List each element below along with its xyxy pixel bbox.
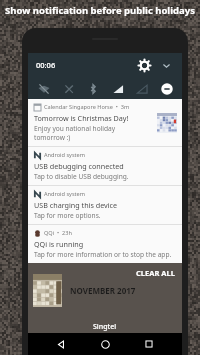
staticText: Tomorrow is Christmas Day! [34, 113, 129, 123]
staticText: Show notification before public holidays [0, 4, 200, 17]
staticText: Enjoy you national holiday tomorrow :) [34, 124, 153, 142]
button[interactable]: Android system [28, 147, 182, 185]
staticText: USB charging this device [34, 200, 118, 210]
staticText: Calendar Singapore Horse • 3m [44, 103, 130, 111]
staticText: QQi is running [34, 239, 84, 249]
staticText: Tap for more information or to stop the … [34, 250, 172, 259]
button[interactable]: Back [50, 333, 72, 355]
staticText: Singtel [93, 322, 117, 332]
button[interactable]: Mobile data [59, 79, 78, 98]
button[interactable]: Settings [136, 57, 152, 73]
staticText: Tap for more options. [34, 211, 101, 220]
staticText: NOVEMBER 2017 [70, 285, 136, 296]
button[interactable]: CLEAR ALL [129, 265, 182, 281]
button[interactable]: Bluetooth [83, 79, 102, 98]
button[interactable]: Signal 2 [132, 79, 151, 98]
staticText: 00:06 [36, 60, 56, 70]
button[interactable]: Calendar Singapore Horse • 3m [28, 99, 182, 146]
button[interactable]: Expand [158, 57, 174, 73]
staticText: USB debugging connected [34, 161, 124, 171]
button[interactable]: Do not disturb [157, 79, 176, 98]
staticText: Tap to disable USB debugging. [34, 172, 129, 181]
staticText: Android system [44, 151, 86, 159]
staticText: QQi • 23h [44, 229, 72, 237]
button[interactable]: QQi • 23h [28, 225, 182, 263]
staticText: CLEAR ALL [136, 268, 175, 278]
button[interactable]: Android system [28, 186, 182, 224]
button[interactable]: Signal [108, 79, 127, 98]
button[interactable]: Wi-Fi [34, 79, 53, 98]
button[interactable]: Home [94, 333, 116, 355]
button[interactable]: Recents [138, 333, 160, 355]
staticText: Android system [44, 190, 86, 198]
